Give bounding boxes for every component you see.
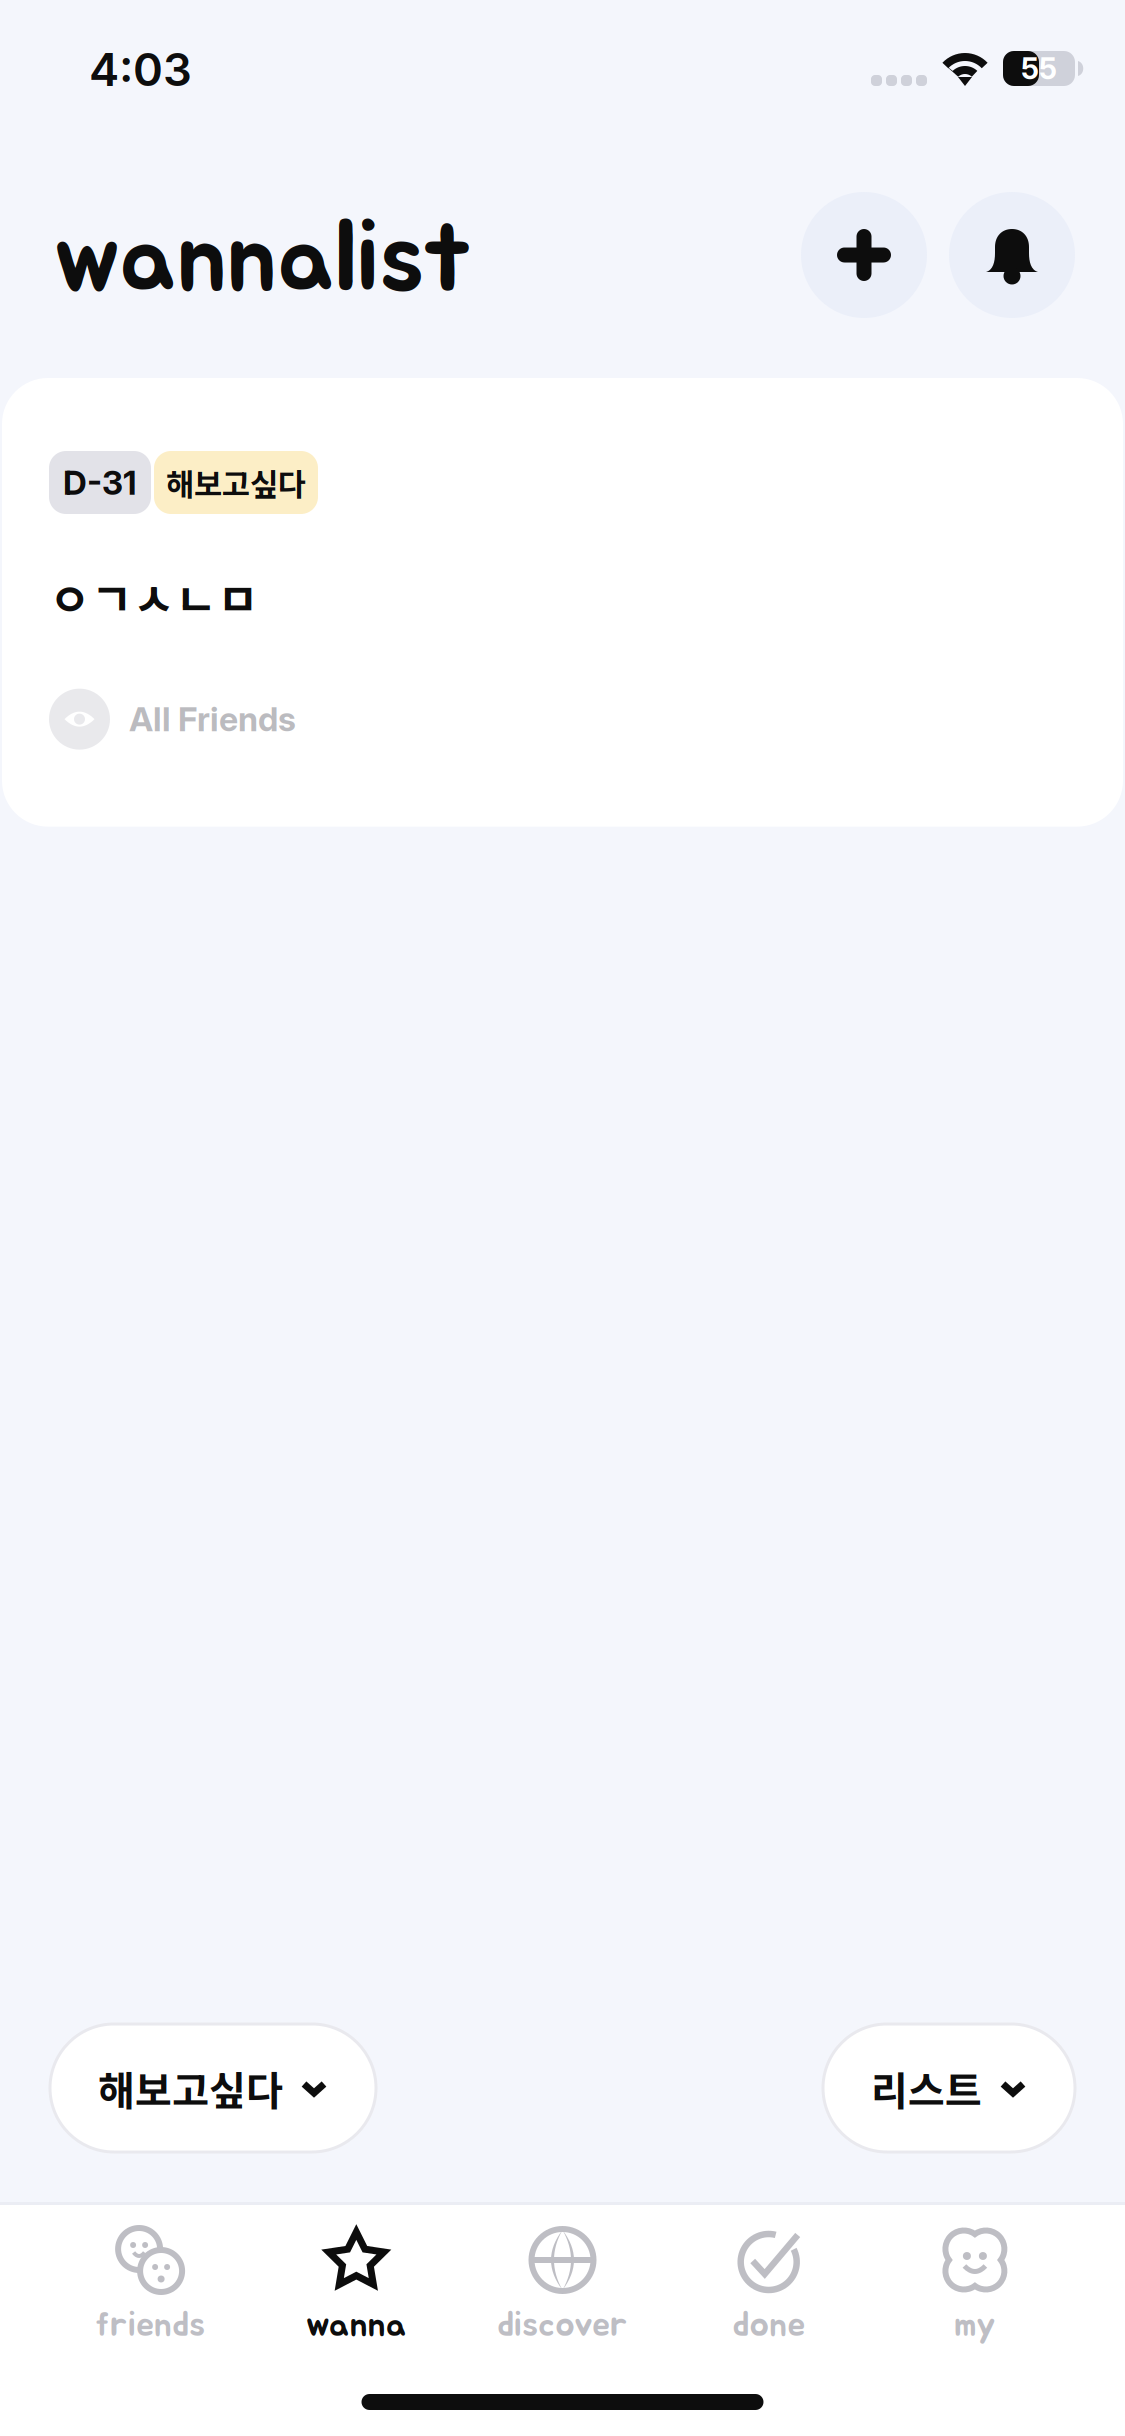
staticText: D-31 [63, 462, 137, 503]
button[interactable]: done [666, 2205, 872, 2357]
staticText: wanna [306, 2307, 407, 2343]
staticText: All Friends [129, 699, 296, 739]
button[interactable]: friends [47, 2205, 253, 2357]
button[interactable]: my [872, 2205, 1078, 2357]
staticText: wannalist [53, 209, 473, 311]
button[interactable]: Notifications [949, 192, 1075, 318]
button[interactable]: wanna [253, 2205, 459, 2357]
button[interactable]: discover [459, 2205, 666, 2357]
staticText: my [954, 2307, 996, 2343]
staticText: 4:03 [89, 42, 192, 97]
button[interactable]: Add wish [801, 192, 927, 318]
staticText: ㅇㄱㅅㄴㅁ [49, 564, 259, 630]
staticText: friends [95, 2307, 205, 2343]
staticText: discover [497, 2307, 628, 2343]
button[interactable]: 리스트 [823, 2024, 1075, 2152]
staticText: 55 [1021, 51, 1057, 86]
staticText: done [732, 2307, 805, 2343]
staticText: 해보고싶다 [166, 460, 306, 505]
staticText: 해보고싶다 [98, 2059, 283, 2117]
button[interactable]: 해보고싶다 [50, 2024, 376, 2152]
staticText: 리스트 [871, 2059, 982, 2117]
button[interactable]: D-31 [2, 378, 1123, 827]
